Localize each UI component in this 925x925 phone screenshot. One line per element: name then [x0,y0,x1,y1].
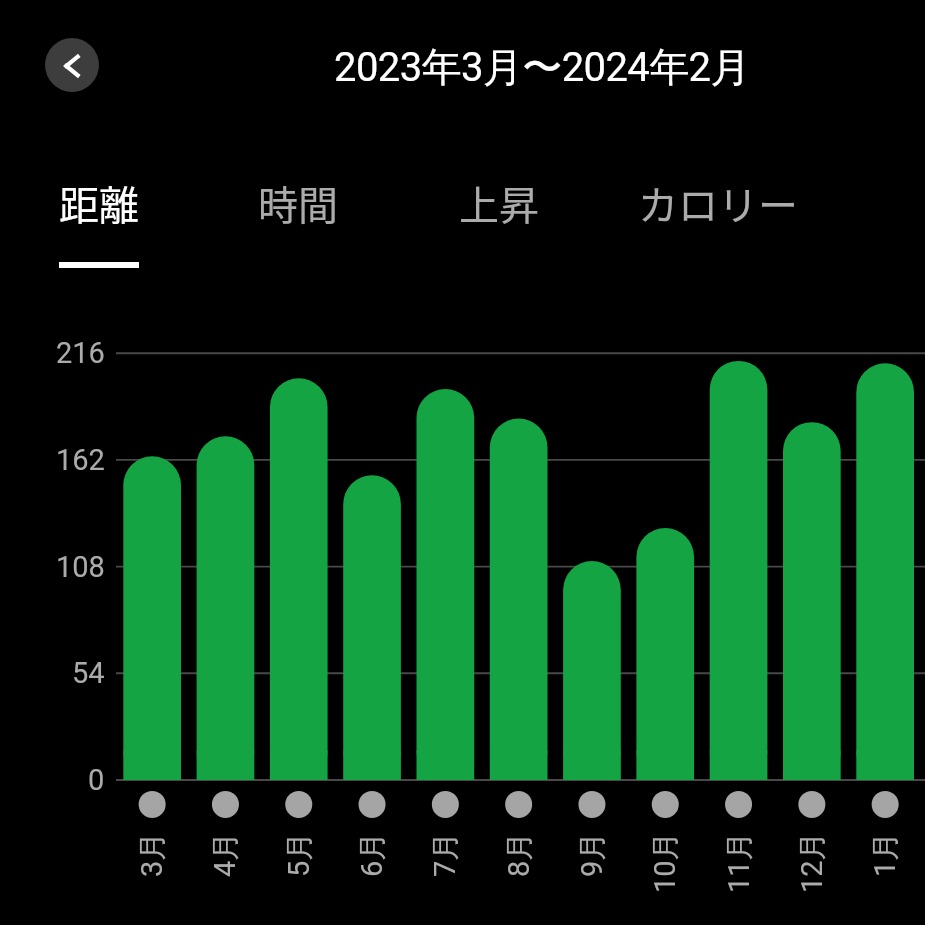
button[interactable]: カロリー [608,168,828,238]
staticText: 時間 [258,174,338,232]
staticText: 0 [88,763,105,797]
staticText: 1月 [867,831,904,877]
staticText: 9月 [574,831,611,877]
staticText: 10月 [647,831,684,893]
staticText: 216 [56,336,105,370]
staticText: 4月 [207,831,244,877]
staticText: 6月 [354,831,391,877]
staticText: カロリー [638,174,798,232]
staticText: 54 [72,656,105,690]
staticText: 上昇 [459,174,539,232]
staticText: 8月 [501,831,538,877]
staticText: 162 [56,443,105,477]
staticText: 2023年3月〜2024年2月 [334,42,750,92]
button[interactable]: 上昇 [397,168,601,238]
staticText: 距離 [59,174,139,232]
staticText: 7月 [427,831,464,877]
button[interactable]: 時間 [199,168,396,238]
staticText: 12月 [794,831,831,893]
staticText: 3月 [134,831,171,877]
button[interactable]: 距離 [0,168,198,238]
staticText: 11月 [721,831,758,893]
staticText: 5月 [281,831,318,877]
staticText: 108 [56,550,105,584]
button[interactable]: Back [45,38,99,92]
